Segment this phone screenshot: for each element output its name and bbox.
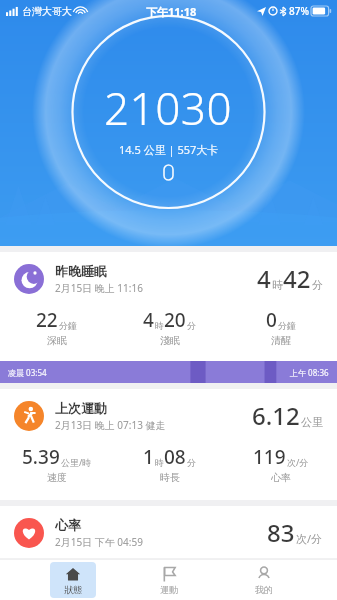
staticText: 上午 08:36 — [290, 367, 329, 378]
staticText: 公里 — [301, 415, 323, 429]
staticText: 深眠 — [47, 334, 67, 347]
button[interactable]: 我的 — [241, 562, 287, 598]
staticText: 0 — [266, 307, 277, 333]
staticText: 時 — [155, 457, 164, 468]
button[interactable]: 心率 — [0, 506, 337, 559]
staticText: 42 — [283, 262, 311, 295]
staticText: 87% — [289, 4, 309, 18]
staticText: 清醒 — [271, 334, 291, 347]
staticText: 5.39 — [22, 444, 60, 470]
staticText: 台灣大哥大 — [22, 5, 72, 18]
button[interactable]: 運動 — [146, 562, 192, 598]
staticText: 次/分 — [287, 456, 309, 468]
button[interactable]: 上次運動 — [0, 389, 337, 500]
button[interactable]: 狀態 — [50, 562, 96, 598]
staticText: 08 — [164, 444, 186, 470]
staticText: 21030 — [104, 78, 233, 138]
staticText: 6.12 — [252, 399, 300, 432]
staticText: 分 — [312, 278, 323, 292]
staticText: 分鐘 — [278, 320, 296, 331]
staticText: 分鐘 — [59, 320, 77, 331]
staticText: 次/分 — [296, 531, 323, 546]
staticText: 淺眠 — [160, 334, 180, 347]
staticText: 心率 — [271, 471, 291, 484]
staticText: 4 — [143, 307, 154, 333]
staticText: 分 — [187, 320, 196, 331]
staticText: 2月15日 晚上 11:16 — [55, 281, 143, 295]
staticText: 心率 — [55, 517, 81, 533]
staticText: 時 — [155, 320, 164, 331]
staticText: 下午11:18 — [146, 4, 197, 19]
staticText: 14.5 公里 | 557大卡 — [119, 142, 219, 157]
button[interactable]: 昨晚睡眠 — [0, 252, 337, 383]
staticText: 1 — [143, 444, 154, 470]
staticText: 20 — [164, 307, 186, 333]
staticText: 凌晨 03:54 — [8, 367, 47, 378]
staticText: 狀態 — [64, 584, 82, 595]
staticText: 時長 — [160, 471, 180, 484]
staticText: 分 — [187, 457, 196, 468]
staticText: 83 — [267, 516, 295, 549]
staticText: 2月15日 下午 04:59 — [55, 535, 143, 549]
staticText: 我的 — [255, 584, 273, 595]
staticText: 上次運動 — [55, 400, 107, 416]
staticText: 4 — [257, 262, 271, 295]
staticText: 2月13日 晚上 07:13 健走 — [55, 418, 166, 432]
staticText: 公里/時 — [61, 456, 92, 468]
staticText: 時 — [272, 278, 283, 292]
staticText: 昨晚睡眠 — [55, 263, 107, 279]
staticText: 22 — [36, 307, 58, 333]
staticText: 119 — [253, 444, 286, 470]
staticText: 運動 — [160, 584, 178, 595]
staticText: 速度 — [47, 471, 67, 484]
